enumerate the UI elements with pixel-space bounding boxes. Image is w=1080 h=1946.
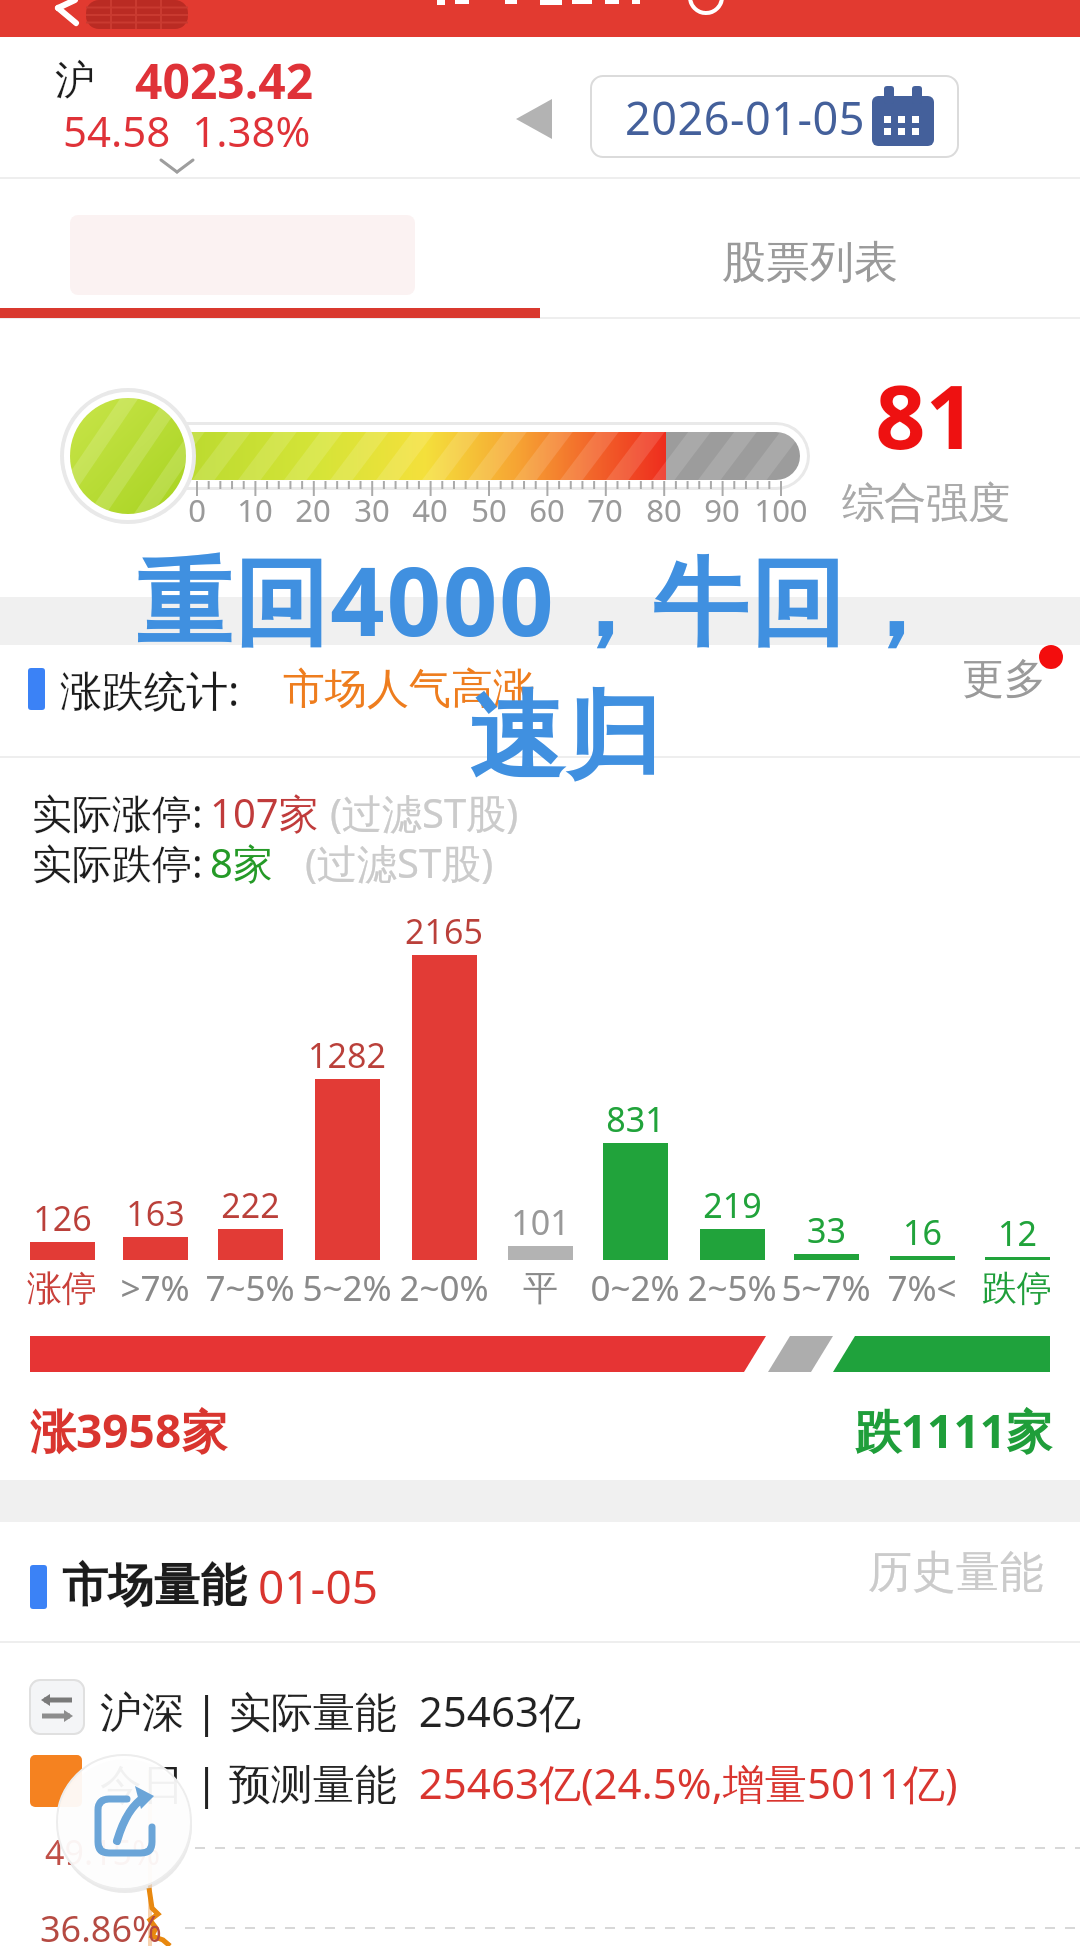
staticText: >7% bbox=[120, 1264, 190, 1312]
button[interactable] bbox=[0, 1745, 1080, 1817]
staticText: 实际跌停: bbox=[32, 835, 203, 890]
staticText: 1282 bbox=[308, 1032, 386, 1078]
staticText: 60 bbox=[529, 489, 565, 531]
staticText: 40 bbox=[412, 489, 448, 531]
staticText: 107家 bbox=[210, 785, 319, 840]
staticText: (过滤ST股) bbox=[330, 785, 519, 840]
staticText: 8家 bbox=[210, 835, 273, 890]
staticText: 今日 | 预测量能 25463亿(24.5%,增量5011亿) bbox=[100, 1754, 958, 1811]
staticText: 平 bbox=[523, 1266, 558, 1310]
button[interactable] bbox=[0, 180, 540, 318]
staticText: 0 bbox=[188, 489, 206, 531]
button[interactable]: 股票列表 bbox=[540, 180, 1080, 318]
staticText: 实际涨停: bbox=[32, 785, 203, 840]
staticText: 126 bbox=[33, 1195, 92, 1241]
staticText: 70 bbox=[587, 489, 623, 531]
staticText: 36.86% bbox=[40, 1904, 162, 1946]
staticText: 49.15% bbox=[45, 1829, 161, 1875]
staticText: 股票列表 bbox=[722, 235, 898, 290]
staticText: 5~7% bbox=[781, 1264, 871, 1312]
staticText: 163 bbox=[126, 1190, 185, 1236]
button[interactable] bbox=[591, 76, 958, 157]
button[interactable]: 历史量能 bbox=[850, 1556, 1080, 1616]
staticText: 0~2% bbox=[590, 1264, 680, 1312]
staticText: 33 bbox=[807, 1207, 846, 1253]
staticText: 50 bbox=[471, 489, 507, 531]
staticText: 市场量能 bbox=[62, 1557, 246, 1615]
staticText: 5~2% bbox=[302, 1264, 392, 1312]
staticText: 跌停 bbox=[982, 1266, 1052, 1310]
staticText: 4023.42 bbox=[135, 48, 314, 113]
staticText: 沪深 | 实际量能 25463亿 bbox=[100, 1682, 581, 1739]
staticText: 重回4000，牛回， bbox=[136, 534, 944, 664]
staticText: 综合强度 bbox=[842, 477, 1010, 530]
staticText: 2026-01-05 bbox=[625, 87, 865, 148]
staticText: 101 bbox=[511, 1199, 570, 1245]
staticText: 市场人气高涨 bbox=[283, 663, 535, 716]
staticText: 涨停 bbox=[27, 1266, 97, 1310]
staticText: 涨跌统计: bbox=[60, 661, 240, 718]
staticText: 2~5% bbox=[687, 1264, 777, 1312]
staticText: 20 bbox=[295, 489, 331, 531]
staticText: 7~5% bbox=[205, 1264, 295, 1312]
staticText: 沪 bbox=[55, 55, 95, 105]
staticText: 16 bbox=[903, 1209, 942, 1255]
staticText: 81 bbox=[875, 355, 976, 475]
staticText: 01-05 bbox=[258, 1555, 379, 1618]
staticText: 2~0% bbox=[399, 1264, 489, 1312]
staticText: 222 bbox=[221, 1182, 280, 1228]
staticText: 219 bbox=[703, 1182, 762, 1228]
staticText: (过滤ST股) bbox=[305, 835, 494, 890]
staticText: 历史量能 bbox=[868, 1545, 1044, 1600]
staticText: 54.58 1.38% bbox=[63, 102, 311, 159]
staticText: 831 bbox=[606, 1096, 665, 1142]
button[interactable] bbox=[0, 1670, 1080, 1742]
staticText: 100 bbox=[754, 489, 808, 531]
staticText: 12 bbox=[998, 1210, 1037, 1256]
staticText: 80 bbox=[646, 489, 682, 531]
staticText: 2165 bbox=[405, 908, 483, 954]
staticText: 跌1111家 bbox=[854, 1399, 1052, 1462]
button[interactable]: 更多 bbox=[940, 660, 1080, 720]
button[interactable] bbox=[30, 0, 100, 37]
staticText: 30 bbox=[354, 489, 390, 531]
staticText: 10 bbox=[237, 489, 273, 531]
staticText: 更多 bbox=[962, 653, 1046, 706]
staticText: 7%< bbox=[887, 1264, 957, 1312]
button[interactable] bbox=[57, 1755, 191, 1889]
staticText: 90 bbox=[704, 489, 740, 531]
staticText: 涨3958家 bbox=[30, 1399, 228, 1462]
staticText: 速归 bbox=[468, 678, 662, 798]
